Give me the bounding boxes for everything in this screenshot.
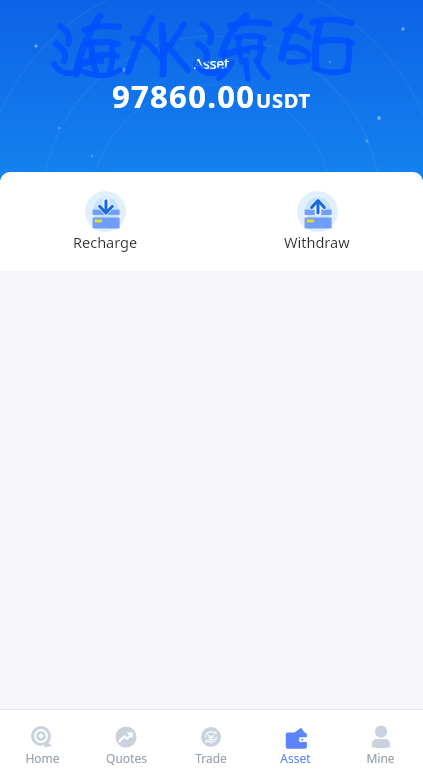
staticText: Trade bbox=[195, 750, 227, 766]
staticText: USDT bbox=[256, 87, 311, 114]
staticText: Withdraw bbox=[284, 232, 350, 252]
staticText: Recharge bbox=[73, 232, 138, 252]
button[interactable]: Trade bbox=[168, 710, 253, 766]
staticText: Quotes bbox=[106, 750, 147, 766]
button[interactable]: Mine bbox=[338, 710, 423, 766]
staticText: Asset bbox=[194, 54, 230, 73]
staticText: 97860.00 bbox=[112, 75, 256, 117]
button[interactable]: Quotes bbox=[84, 710, 168, 766]
button[interactable]: Home bbox=[0, 710, 84, 766]
staticText: Home bbox=[25, 750, 60, 766]
button[interactable]: Withdraw bbox=[264, 172, 370, 260]
button[interactable]: Recharge bbox=[53, 172, 158, 260]
staticText: Mine bbox=[366, 750, 395, 766]
button[interactable]: Asset bbox=[253, 710, 338, 766]
staticText: Asset bbox=[280, 750, 311, 766]
